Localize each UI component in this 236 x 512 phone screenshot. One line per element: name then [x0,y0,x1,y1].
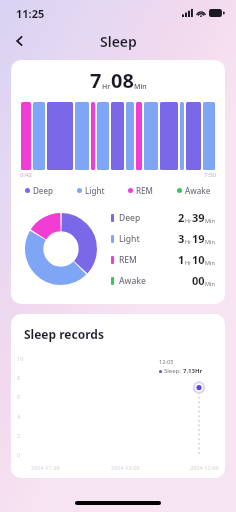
staticText: 7 [90,67,102,94]
staticText: Sleep [100,32,137,51]
staticText: REM [136,185,153,196]
staticText: Hr [185,259,192,266]
staticText: 2 [17,432,21,439]
staticText: REM [119,254,137,266]
staticText: 7:50 [204,171,216,179]
staticText: Min [205,238,215,245]
button[interactable]: Awake [111,270,215,291]
staticText: 2024-12-02 [111,464,140,471]
staticText: Min [205,280,215,287]
staticText: 0:42 [20,171,32,179]
staticText: 12-05 [159,358,174,365]
button[interactable]: Back [6,27,34,55]
staticText: Sleep: [164,367,183,375]
staticText: 8 [17,374,21,381]
staticText: 19 [192,231,205,246]
staticText: 0 [17,451,21,458]
button[interactable]: Light [111,228,215,249]
staticText: Awake [119,275,146,287]
staticText: Min [134,82,147,92]
staticText: Awake [185,185,211,196]
staticText: Hr [185,238,192,245]
staticText: 10 [17,355,24,362]
staticText: 2 [178,210,185,225]
staticText: 1 [178,252,185,267]
staticText: Sleep records [24,326,104,342]
staticText: 08 [111,67,134,94]
staticText: 6 [17,393,21,400]
staticText: 00 [192,273,205,288]
button[interactable]: REM [111,249,215,270]
staticText: Light [119,233,140,245]
staticText: Hr [185,217,192,224]
staticText: 2024-12-05 [190,464,219,471]
staticText: Min [205,259,215,266]
staticText: Light [85,185,105,196]
staticText: Hr [102,82,111,92]
button[interactable]: Deep [111,207,215,228]
staticText: Deep [119,212,141,224]
staticText: 7.13Hr [183,367,203,375]
staticText: 4 [17,413,21,420]
staticText: 3 [178,231,185,246]
staticText: 2024-11-29 [31,464,60,471]
staticText: 39 [192,210,205,225]
staticText: Min [205,217,215,224]
staticText: Deep [33,185,53,196]
button[interactable]: 12-05 [155,355,221,378]
staticText: 10 [192,252,205,267]
staticText: 11:25 [16,6,45,21]
